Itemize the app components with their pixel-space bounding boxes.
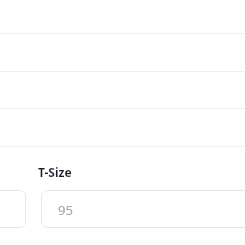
staticText: T-Size bbox=[38, 164, 72, 180]
button[interactable]: 95 bbox=[41, 190, 245, 228]
button[interactable]: Previous size field bbox=[0, 190, 26, 228]
staticText: 95 bbox=[58, 201, 73, 219]
